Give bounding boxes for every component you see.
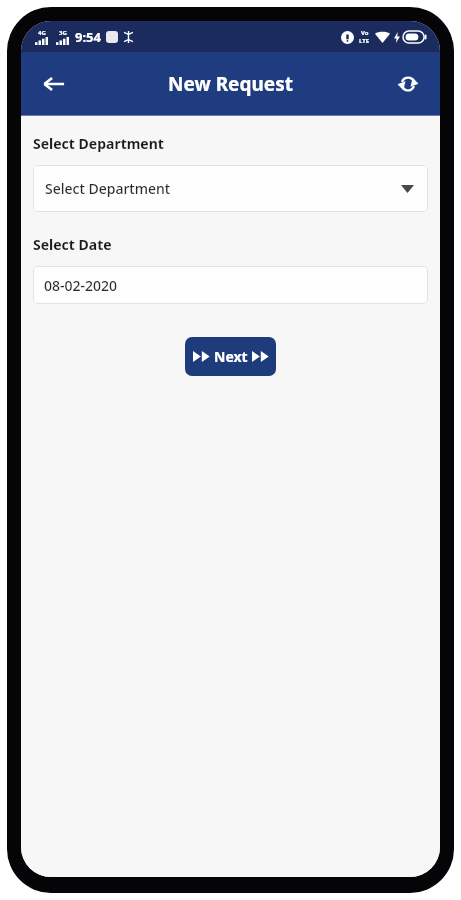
staticText: 3G (59, 29, 67, 37)
button[interactable]: Back (31, 61, 77, 107)
staticText: Select Department (33, 134, 164, 153)
staticText: Next (214, 347, 248, 366)
staticText: Select Date (33, 235, 112, 254)
button[interactable]: Refresh (386, 62, 430, 106)
button[interactable]: Select Department (33, 165, 428, 212)
staticText: LTE (359, 37, 370, 45)
staticText: New Request (168, 71, 293, 97)
button[interactable]: 08-02-2020 (33, 266, 428, 304)
staticText: 08-02-2020 (44, 276, 118, 295)
button[interactable]: Next (185, 337, 276, 376)
staticText: 9:54 (75, 28, 101, 46)
staticText: Vo (361, 29, 369, 37)
staticText: Select Department (45, 179, 171, 198)
staticText: 4G (38, 29, 46, 37)
